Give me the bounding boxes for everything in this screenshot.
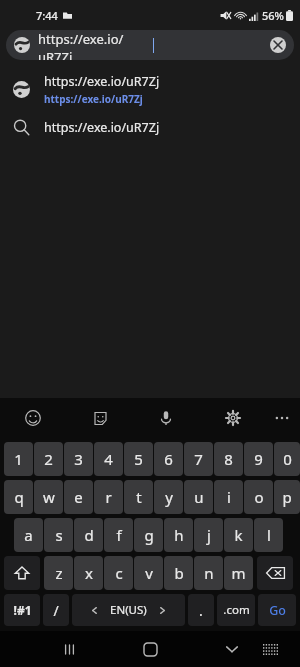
staticText: Go	[269, 602, 286, 619]
button[interactable]: a	[14, 518, 43, 552]
button[interactable]: l	[254, 518, 283, 552]
staticText: 0	[283, 449, 292, 469]
staticText: .com	[223, 602, 250, 618]
button[interactable]: w	[34, 480, 63, 514]
staticText: 2	[44, 449, 53, 469]
staticText: h	[174, 525, 184, 545]
button[interactable]: 4	[94, 442, 123, 476]
staticText: t	[136, 487, 142, 507]
staticText: .	[199, 601, 203, 620]
staticText: https://exe.io/uR7Zj	[44, 119, 160, 136]
button[interactable]: p	[274, 480, 300, 514]
button[interactable]: z	[44, 556, 73, 590]
staticText: k	[234, 525, 243, 545]
staticText: f	[116, 525, 122, 545]
button[interactable]: More options	[271, 407, 293, 429]
staticText: x	[85, 563, 93, 583]
staticText: q	[14, 487, 24, 507]
staticText: y	[165, 487, 173, 507]
button[interactable]: https://exe.io/uR7Zj	[0, 110, 300, 144]
button[interactable]: https://exe.io/uR7Zj	[6, 30, 294, 60]
button[interactable]: /	[43, 594, 69, 626]
button[interactable]: EN(US)	[72, 594, 185, 626]
staticText: 1	[14, 449, 23, 469]
staticText: w	[43, 487, 55, 507]
button[interactable]: n	[194, 556, 223, 590]
staticText: o	[254, 487, 264, 507]
button[interactable]: Emoji	[22, 407, 44, 429]
staticText: g	[144, 525, 154, 545]
button[interactable]: Hide keyboard	[218, 635, 246, 663]
button[interactable]: v	[134, 556, 163, 590]
staticText: 5	[134, 449, 143, 469]
staticText: p	[282, 487, 292, 507]
button[interactable]: f	[104, 518, 133, 552]
button[interactable]: x	[74, 556, 103, 590]
button[interactable]: Keyboard settings	[222, 407, 244, 429]
button[interactable]: b	[164, 556, 193, 590]
button[interactable]: Voice input	[155, 407, 177, 429]
button[interactable]: 3	[64, 442, 93, 476]
button[interactable]: 5	[124, 442, 153, 476]
button[interactable]: .com	[217, 594, 255, 626]
staticText: l	[267, 525, 271, 545]
button[interactable]: Home	[135, 634, 165, 664]
staticText: 9	[254, 449, 263, 469]
button[interactable]: j	[194, 518, 223, 552]
button[interactable]: https://exe.io/uR7Zj	[0, 68, 300, 110]
button[interactable]: d	[74, 518, 103, 552]
button[interactable]: 6	[154, 442, 183, 476]
staticText: https://exe.io/uR7Zj	[44, 73, 160, 90]
staticText: z	[55, 563, 63, 583]
button[interactable]: 9	[244, 442, 273, 476]
staticText: m	[231, 563, 246, 583]
staticText: b	[174, 563, 184, 583]
button[interactable]: c	[104, 556, 133, 590]
staticText: EN(US)	[110, 602, 147, 618]
button[interactable]: e	[64, 480, 93, 514]
staticText: 6	[164, 449, 173, 469]
staticText: s	[55, 525, 63, 545]
staticText: https://exe.io/uR7Zj	[44, 92, 143, 106]
button[interactable]: r	[94, 480, 123, 514]
staticText: !#1	[13, 602, 32, 618]
staticText: a	[24, 525, 33, 545]
button[interactable]: m	[224, 556, 253, 590]
staticText: 7	[194, 449, 203, 469]
staticText: c	[115, 563, 123, 583]
button[interactable]: Recent apps	[55, 635, 83, 663]
button[interactable]: t	[124, 480, 153, 514]
staticText: n	[204, 563, 214, 583]
button[interactable]: 1	[4, 442, 33, 476]
button[interactable]: .	[188, 594, 214, 626]
button[interactable]: u	[184, 480, 213, 514]
staticText: d	[84, 525, 94, 545]
button[interactable]: 0	[274, 442, 300, 476]
button[interactable]: q	[4, 480, 33, 514]
button[interactable]: Backspace	[257, 556, 293, 590]
staticText: 8	[224, 449, 233, 469]
button[interactable]: Shift	[4, 556, 40, 590]
button[interactable]: Stickers	[89, 407, 111, 429]
button[interactable]: Clear	[270, 37, 286, 53]
button[interactable]: Switch keyboard	[256, 635, 284, 663]
staticText: 56%	[262, 8, 284, 23]
staticText: e	[74, 487, 83, 507]
button[interactable]: i	[214, 480, 243, 514]
button[interactable]: y	[154, 480, 183, 514]
button[interactable]: k	[224, 518, 253, 552]
button[interactable]: h	[164, 518, 193, 552]
button[interactable]: Go	[258, 594, 296, 626]
button[interactable]: 2	[34, 442, 63, 476]
staticText: 4	[104, 449, 113, 469]
staticText: 7:44	[36, 8, 58, 23]
button[interactable]: g	[134, 518, 163, 552]
button[interactable]: 7	[184, 442, 213, 476]
staticText: r	[105, 487, 112, 507]
button[interactable]: 8	[214, 442, 243, 476]
button[interactable]: s	[44, 518, 73, 552]
button[interactable]: o	[244, 480, 273, 514]
staticText: /	[53, 601, 59, 620]
staticText: v	[145, 563, 153, 583]
button[interactable]: !#1	[4, 594, 40, 626]
